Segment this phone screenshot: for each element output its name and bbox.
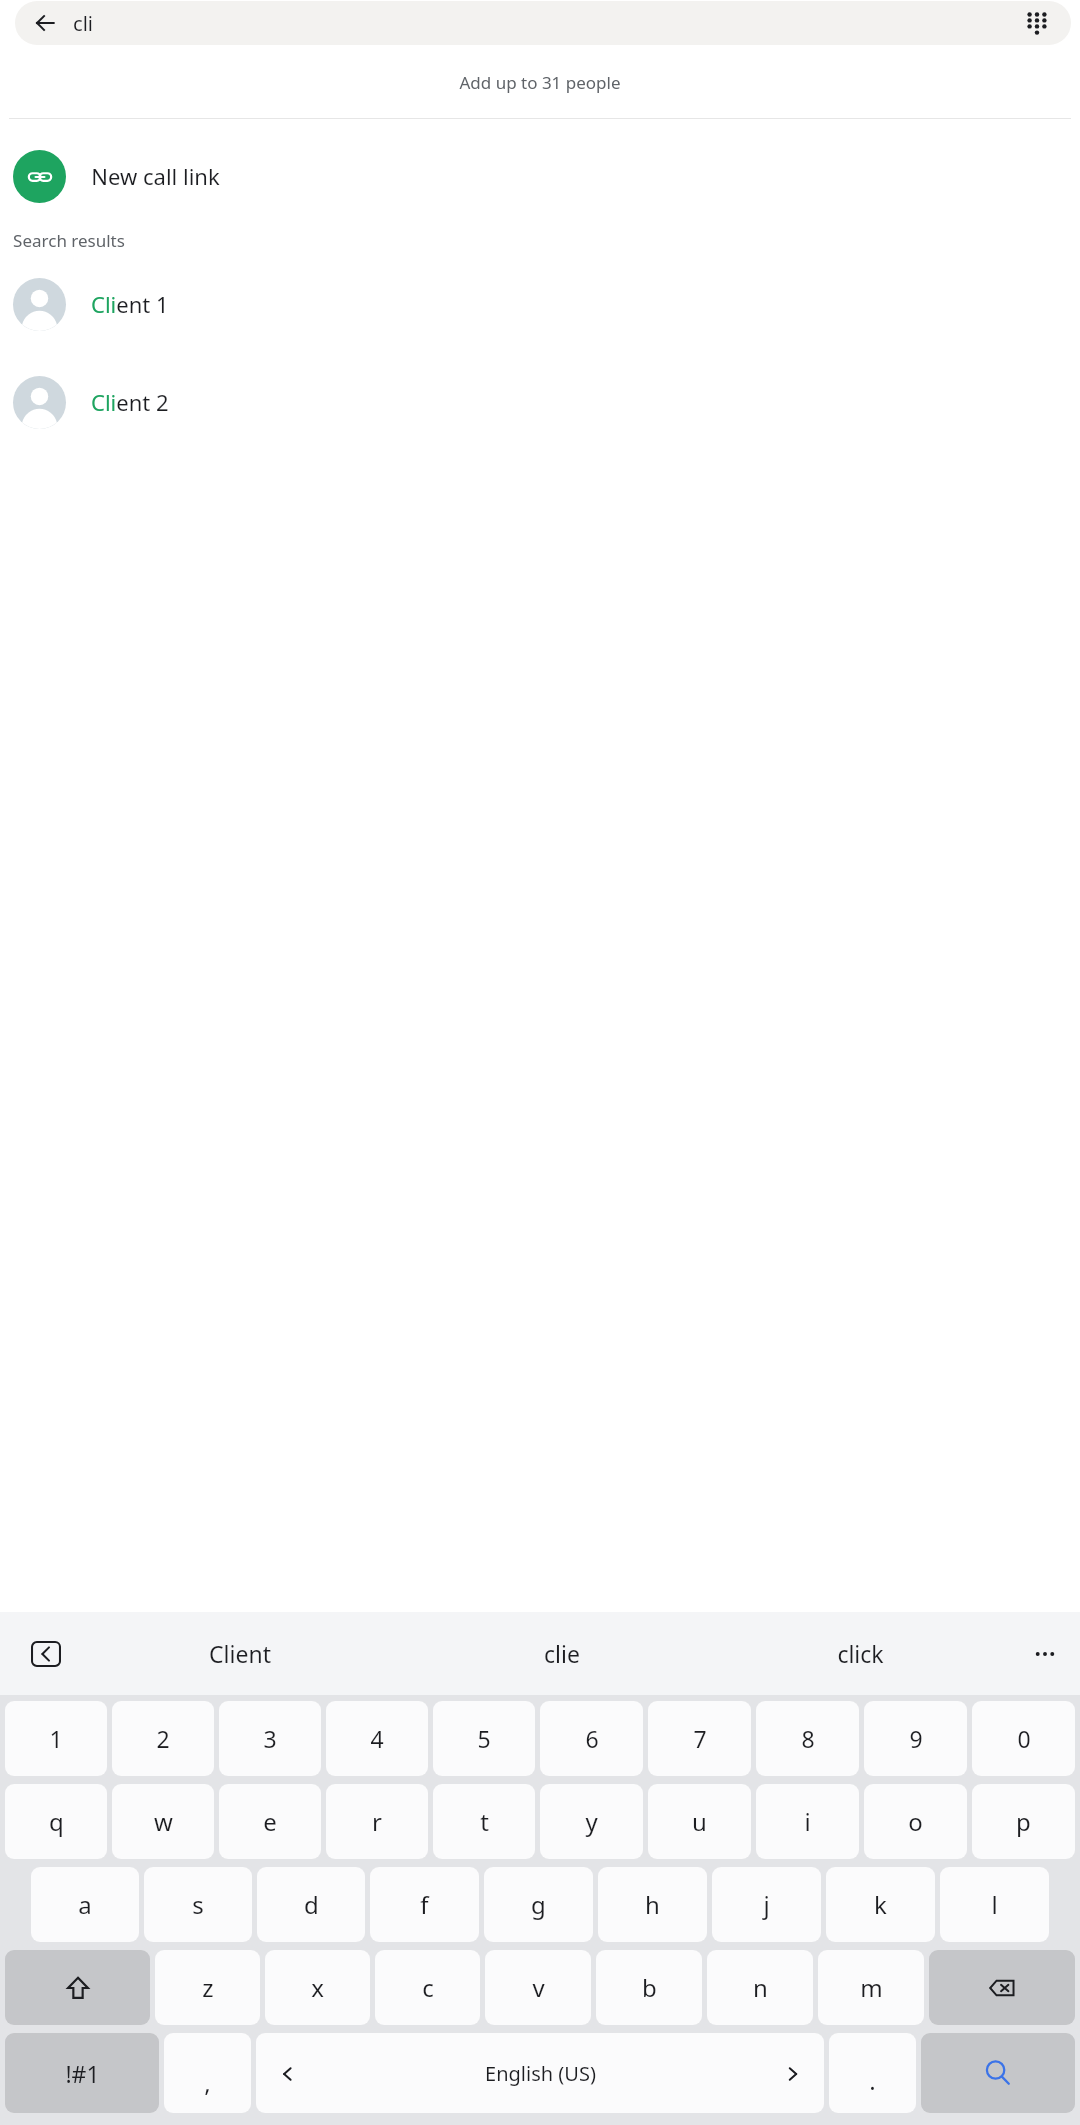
staticText: 4 [370,1723,384,1754]
staticText: 7 [693,1723,707,1754]
staticText: Client [209,1638,271,1669]
button[interactable]: 5 [433,1701,535,1776]
button[interactable]: m [818,1950,924,2025]
button[interactable]: j [712,1867,821,1942]
staticText: z [202,1971,214,2004]
staticText: 3 [263,1723,277,1754]
button[interactable]: Space, English (US) [256,2033,824,2113]
button[interactable]: z [155,1950,260,2025]
staticText: m [860,1971,883,2004]
button[interactable]: , [164,2033,251,2113]
staticText: c [422,1971,434,2004]
button[interactable]: 3 [219,1701,321,1776]
staticText: h [645,1888,660,1921]
button[interactable]: k [826,1867,935,1942]
button[interactable]: Client [68,1612,412,1695]
button[interactable]: h [598,1867,707,1942]
button[interactable]: x [265,1950,370,2025]
button[interactable]: 2 [112,1701,214,1776]
button[interactable]: d [257,1867,365,1942]
button[interactable]: New call link [0,143,1080,209]
button[interactable]: t [433,1784,535,1859]
staticText: n [753,1971,768,2004]
staticText: g [531,1888,546,1921]
staticText: Search results [13,229,125,252]
button[interactable]: a [31,1867,139,1942]
staticText: 2 [156,1723,170,1754]
staticText: . [869,2064,876,2097]
button[interactable]: u [648,1784,751,1859]
staticText: b [642,1971,657,2004]
button[interactable]: 8 [756,1701,859,1776]
staticText: w [154,1805,173,1838]
button[interactable]: 6 [540,1701,643,1776]
staticText: s [192,1888,204,1921]
staticText: v [532,1971,545,2004]
staticText: 5 [477,1723,491,1754]
button[interactable]: g [484,1867,593,1942]
staticText: e [263,1805,277,1838]
staticText: j [763,1888,770,1921]
button[interactable]: More options [1010,1612,1080,1695]
staticText: q [49,1805,64,1838]
staticText: k [874,1888,887,1921]
button[interactable]: i [756,1784,859,1859]
button[interactable]: 7 [648,1701,751,1776]
button[interactable]: click [711,1612,1010,1695]
button[interactable]: Previous suggestions [24,1632,68,1676]
button[interactable]: 0 [972,1701,1075,1776]
staticText: o [908,1805,923,1838]
button[interactable]: !#1 [5,2033,159,2113]
staticText: click [837,1638,884,1669]
button[interactable]: n [707,1950,813,2025]
button[interactable]: Dialpad [1013,1,1061,45]
button[interactable]: c [375,1950,480,2025]
button[interactable]: Client 2 [0,360,1080,444]
staticText: Client 1 [91,289,169,319]
staticText: y [585,1805,598,1838]
button[interactable]: q [5,1784,107,1859]
button[interactable]: w [112,1784,214,1859]
button[interactable]: . [829,2033,916,2113]
staticText: p [1016,1805,1031,1838]
button[interactable]: f [370,1867,479,1942]
button[interactable]: Search [921,2033,1075,2113]
button[interactable]: l [940,1867,1049,1942]
staticText: u [692,1805,707,1838]
button[interactable]: r [326,1784,428,1859]
staticText: t [480,1805,489,1838]
staticText: clie [544,1638,580,1669]
staticText: f [420,1888,429,1921]
button[interactable]: s [144,1867,252,1942]
button[interactable]: e [219,1784,321,1859]
button[interactable]: Back [23,1,67,45]
button[interactable]: 1 [5,1701,107,1776]
staticText: 1 [49,1723,63,1754]
staticText: r [372,1805,382,1838]
staticText: l [991,1888,998,1921]
button[interactable]: p [972,1784,1075,1859]
button[interactable]: Backspace [929,1950,1075,2025]
staticText: New call link [91,161,220,191]
staticText: English (US) [485,2060,596,2087]
button[interactable]: v [485,1950,591,2025]
button[interactable]: clie [412,1612,711,1695]
staticText: 8 [801,1723,815,1754]
staticText: a [78,1888,92,1921]
button[interactable]: 9 [864,1701,967,1776]
staticText: cli [73,10,93,37]
staticText: , [204,2066,211,2099]
staticText: d [304,1888,319,1921]
button[interactable]: b [596,1950,702,2025]
staticText: 6 [585,1723,599,1754]
button[interactable]: o [864,1784,967,1859]
staticText: i [804,1805,811,1838]
button[interactable]: y [540,1784,643,1859]
button[interactable]: Client 1 [0,262,1080,346]
staticText: 9 [909,1723,923,1754]
staticText: !#1 [65,2058,100,2089]
button[interactable]: 4 [326,1701,428,1776]
button[interactable]: Shift [5,1950,150,2025]
staticText: x [311,1971,324,2004]
staticText: Client 2 [91,387,169,417]
